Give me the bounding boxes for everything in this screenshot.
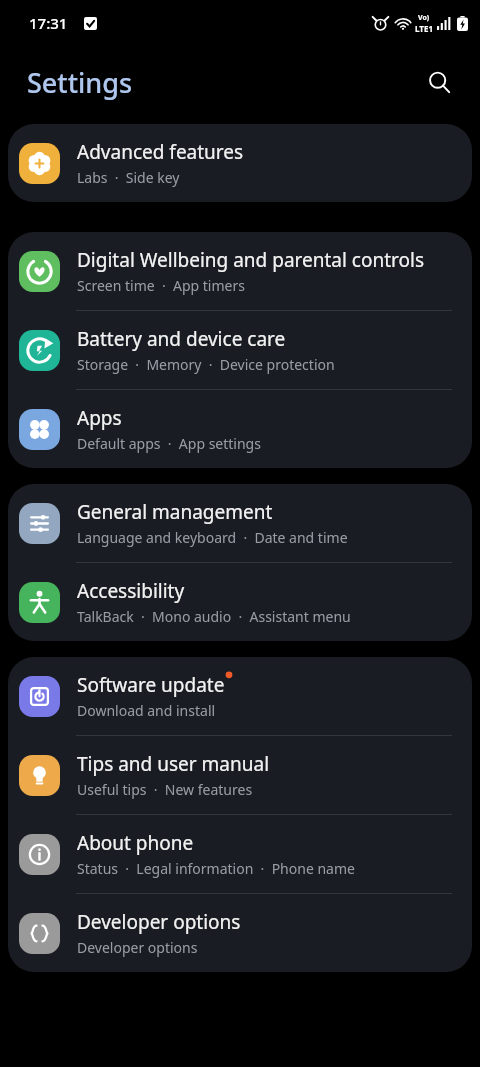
button[interactable]: General management bbox=[8, 484, 472, 562]
staticText: Battery and device care bbox=[77, 326, 286, 352]
staticText: Storage · Memory · Device protection bbox=[77, 355, 335, 374]
staticText: Language and keyboard · Date and time bbox=[77, 528, 348, 547]
staticText: Developer options bbox=[77, 909, 241, 935]
staticText: Vo) bbox=[418, 13, 430, 23]
staticText: Advanced features bbox=[77, 139, 244, 165]
button[interactable]: Accessibility bbox=[8, 563, 472, 641]
button[interactable]: Tips and user manual bbox=[8, 736, 472, 814]
staticText: Useful tips · New features bbox=[77, 780, 253, 799]
button[interactable]: About phone bbox=[8, 815, 472, 893]
staticText: General management bbox=[77, 499, 273, 525]
staticText: Digital Wellbeing and parental controls bbox=[77, 247, 425, 273]
staticText: 17:31 bbox=[29, 13, 68, 33]
staticText: Tips and user manual bbox=[77, 751, 270, 777]
staticText: TalkBack · Mono audio · Assistant menu bbox=[77, 607, 351, 626]
button[interactable]: Digital Wellbeing and parental controls bbox=[8, 232, 472, 310]
staticText: Developer options bbox=[77, 938, 198, 957]
staticText: About phone bbox=[77, 830, 194, 856]
staticText: Settings bbox=[27, 64, 133, 101]
button[interactable]: Developer options bbox=[8, 894, 472, 972]
button[interactable]: Advanced features bbox=[8, 124, 472, 202]
staticText: LTE1 bbox=[415, 23, 433, 34]
staticText: Status · Legal information · Phone name bbox=[77, 859, 355, 878]
button[interactable]: Search bbox=[417, 60, 461, 104]
button[interactable]: Apps bbox=[8, 390, 472, 468]
staticText: Apps bbox=[77, 405, 122, 431]
staticText: Labs · Side key bbox=[77, 168, 180, 187]
button[interactable]: Software update bbox=[8, 657, 472, 735]
staticText: Accessibility bbox=[77, 578, 185, 604]
button[interactable]: Battery and device care bbox=[8, 311, 472, 389]
staticText: Default apps · App settings bbox=[77, 434, 261, 453]
staticText: Screen time · App timers bbox=[77, 276, 245, 295]
staticText: Software update bbox=[77, 672, 225, 698]
staticText: Download and install bbox=[77, 701, 216, 720]
